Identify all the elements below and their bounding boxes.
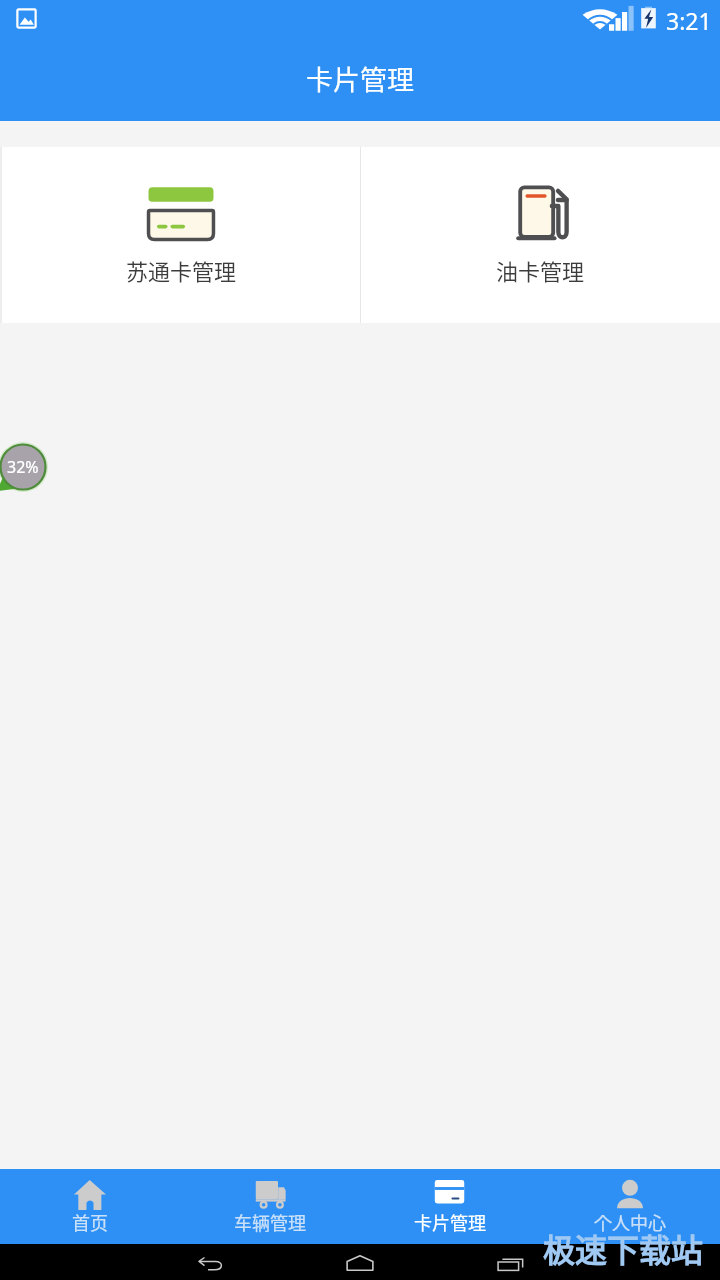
staticText: 3:21 — [666, 5, 712, 36]
staticText: 车辆管理 — [234, 1209, 306, 1235]
staticText: 极速下载站 — [543, 1225, 704, 1271]
other: Back — [198, 1256, 223, 1271]
other: Recent apps — [497, 1256, 524, 1271]
staticText: 油卡管理 — [496, 254, 585, 286]
button[interactable]: 卡片管理 — [360, 1169, 540, 1244]
staticText: 卡片管理 — [306, 59, 414, 98]
staticText: 首页 — [72, 1209, 108, 1235]
button[interactable]: 个人中心 — [540, 1169, 720, 1244]
other: Home — [346, 1255, 374, 1271]
button[interactable]: 车辆管理 — [180, 1169, 360, 1244]
other: Screenshot — [16, 8, 37, 29]
button[interactable]: 油卡管理 — [361, 147, 720, 323]
staticText: 个人中心 — [594, 1209, 666, 1235]
staticText: 32% — [7, 456, 39, 478]
staticText: 卡片管理 — [414, 1209, 486, 1235]
button[interactable]: 首页 — [0, 1169, 180, 1244]
staticText: 苏通卡管理 — [126, 254, 237, 286]
button[interactable]: 苏通卡管理 — [2, 147, 360, 323]
